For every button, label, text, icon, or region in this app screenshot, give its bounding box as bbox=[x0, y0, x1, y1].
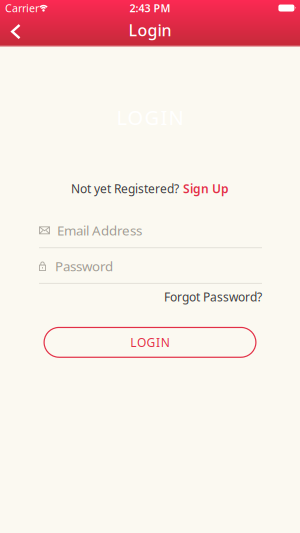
button[interactable]: Password bbox=[0, 257, 300, 284]
staticText: L bbox=[130, 334, 136, 350]
staticText: O bbox=[127, 104, 143, 131]
staticText: G bbox=[146, 334, 155, 350]
staticText: Login bbox=[128, 19, 171, 41]
staticText: Email Address bbox=[57, 221, 142, 239]
staticText: N bbox=[161, 334, 170, 350]
staticText: I bbox=[156, 334, 160, 350]
staticText: Sign Up bbox=[183, 181, 229, 196]
staticText: Not yet Registered? bbox=[71, 181, 179, 196]
staticText: Forgot Password? bbox=[164, 289, 262, 305]
button[interactable]: L bbox=[43, 327, 256, 358]
button[interactable]: Back bbox=[0, 16, 21, 47]
button[interactable]: Email Address bbox=[0, 221, 300, 248]
staticText: Carrier bbox=[5, 1, 39, 15]
button[interactable]: Sign Up bbox=[183, 181, 229, 196]
staticText: O bbox=[137, 334, 146, 350]
staticText: L bbox=[116, 104, 126, 131]
staticText: Password bbox=[55, 257, 113, 275]
staticText: I bbox=[160, 104, 167, 131]
button[interactable]: Forgot Password? bbox=[164, 289, 262, 305]
staticText: 2:43 PM bbox=[129, 1, 170, 15]
staticText: N bbox=[168, 104, 183, 131]
staticText: G bbox=[144, 104, 159, 131]
